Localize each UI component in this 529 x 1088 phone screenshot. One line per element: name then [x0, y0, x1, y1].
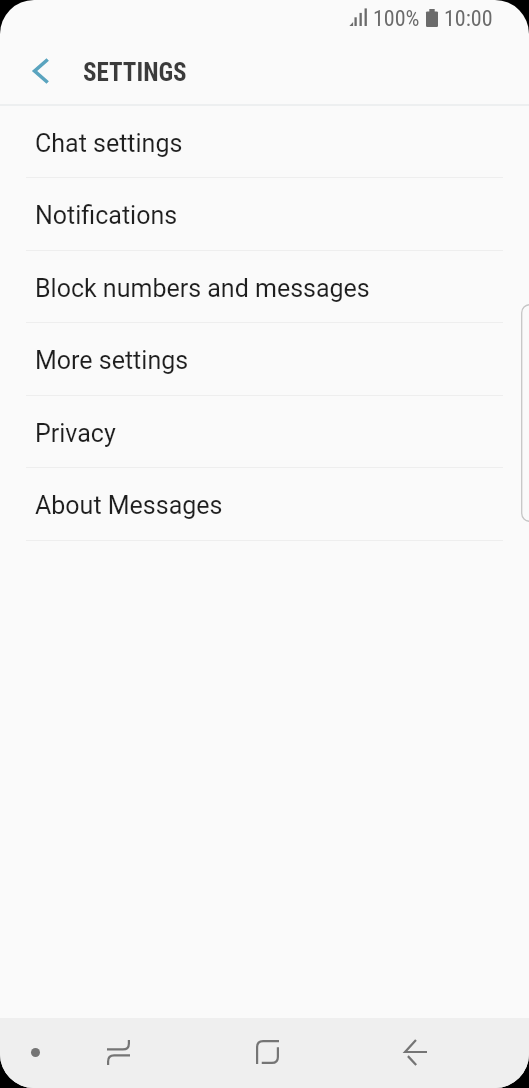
- button[interactable]: Back: [391, 1028, 439, 1076]
- button[interactable]: Notifications: [0, 178, 529, 251]
- button[interactable]: Block numbers and messages: [0, 251, 529, 323]
- button[interactable]: Recent apps: [94, 1028, 142, 1076]
- staticText: SETTINGS: [83, 58, 187, 87]
- staticText: Chat settings: [35, 129, 183, 158]
- button[interactable]: Navigate up: [18, 48, 64, 94]
- staticText: 100%: [373, 6, 420, 32]
- button[interactable]: About Messages: [0, 468, 529, 541]
- staticText: Block numbers and messages: [35, 274, 370, 303]
- staticText: More settings: [35, 346, 189, 375]
- staticText: About Messages: [35, 491, 223, 520]
- button[interactable]: Home: [243, 1028, 291, 1076]
- staticText: Privacy: [35, 419, 116, 448]
- staticText: 10:00: [444, 6, 493, 32]
- button[interactable]: Chat settings: [0, 106, 529, 178]
- button[interactable]: Menu: [11, 1028, 59, 1076]
- button[interactable]: Privacy: [0, 396, 529, 468]
- button[interactable]: More settings: [0, 323, 529, 396]
- staticText: Notifications: [35, 201, 178, 230]
